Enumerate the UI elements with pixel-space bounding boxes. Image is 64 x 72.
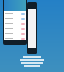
button[interactable]	[4, 11, 26, 16]
button[interactable]	[4, 16, 26, 21]
button[interactable]	[4, 26, 26, 31]
button[interactable]	[4, 31, 26, 36]
button[interactable]	[4, 36, 26, 41]
button[interactable]	[4, 21, 26, 26]
